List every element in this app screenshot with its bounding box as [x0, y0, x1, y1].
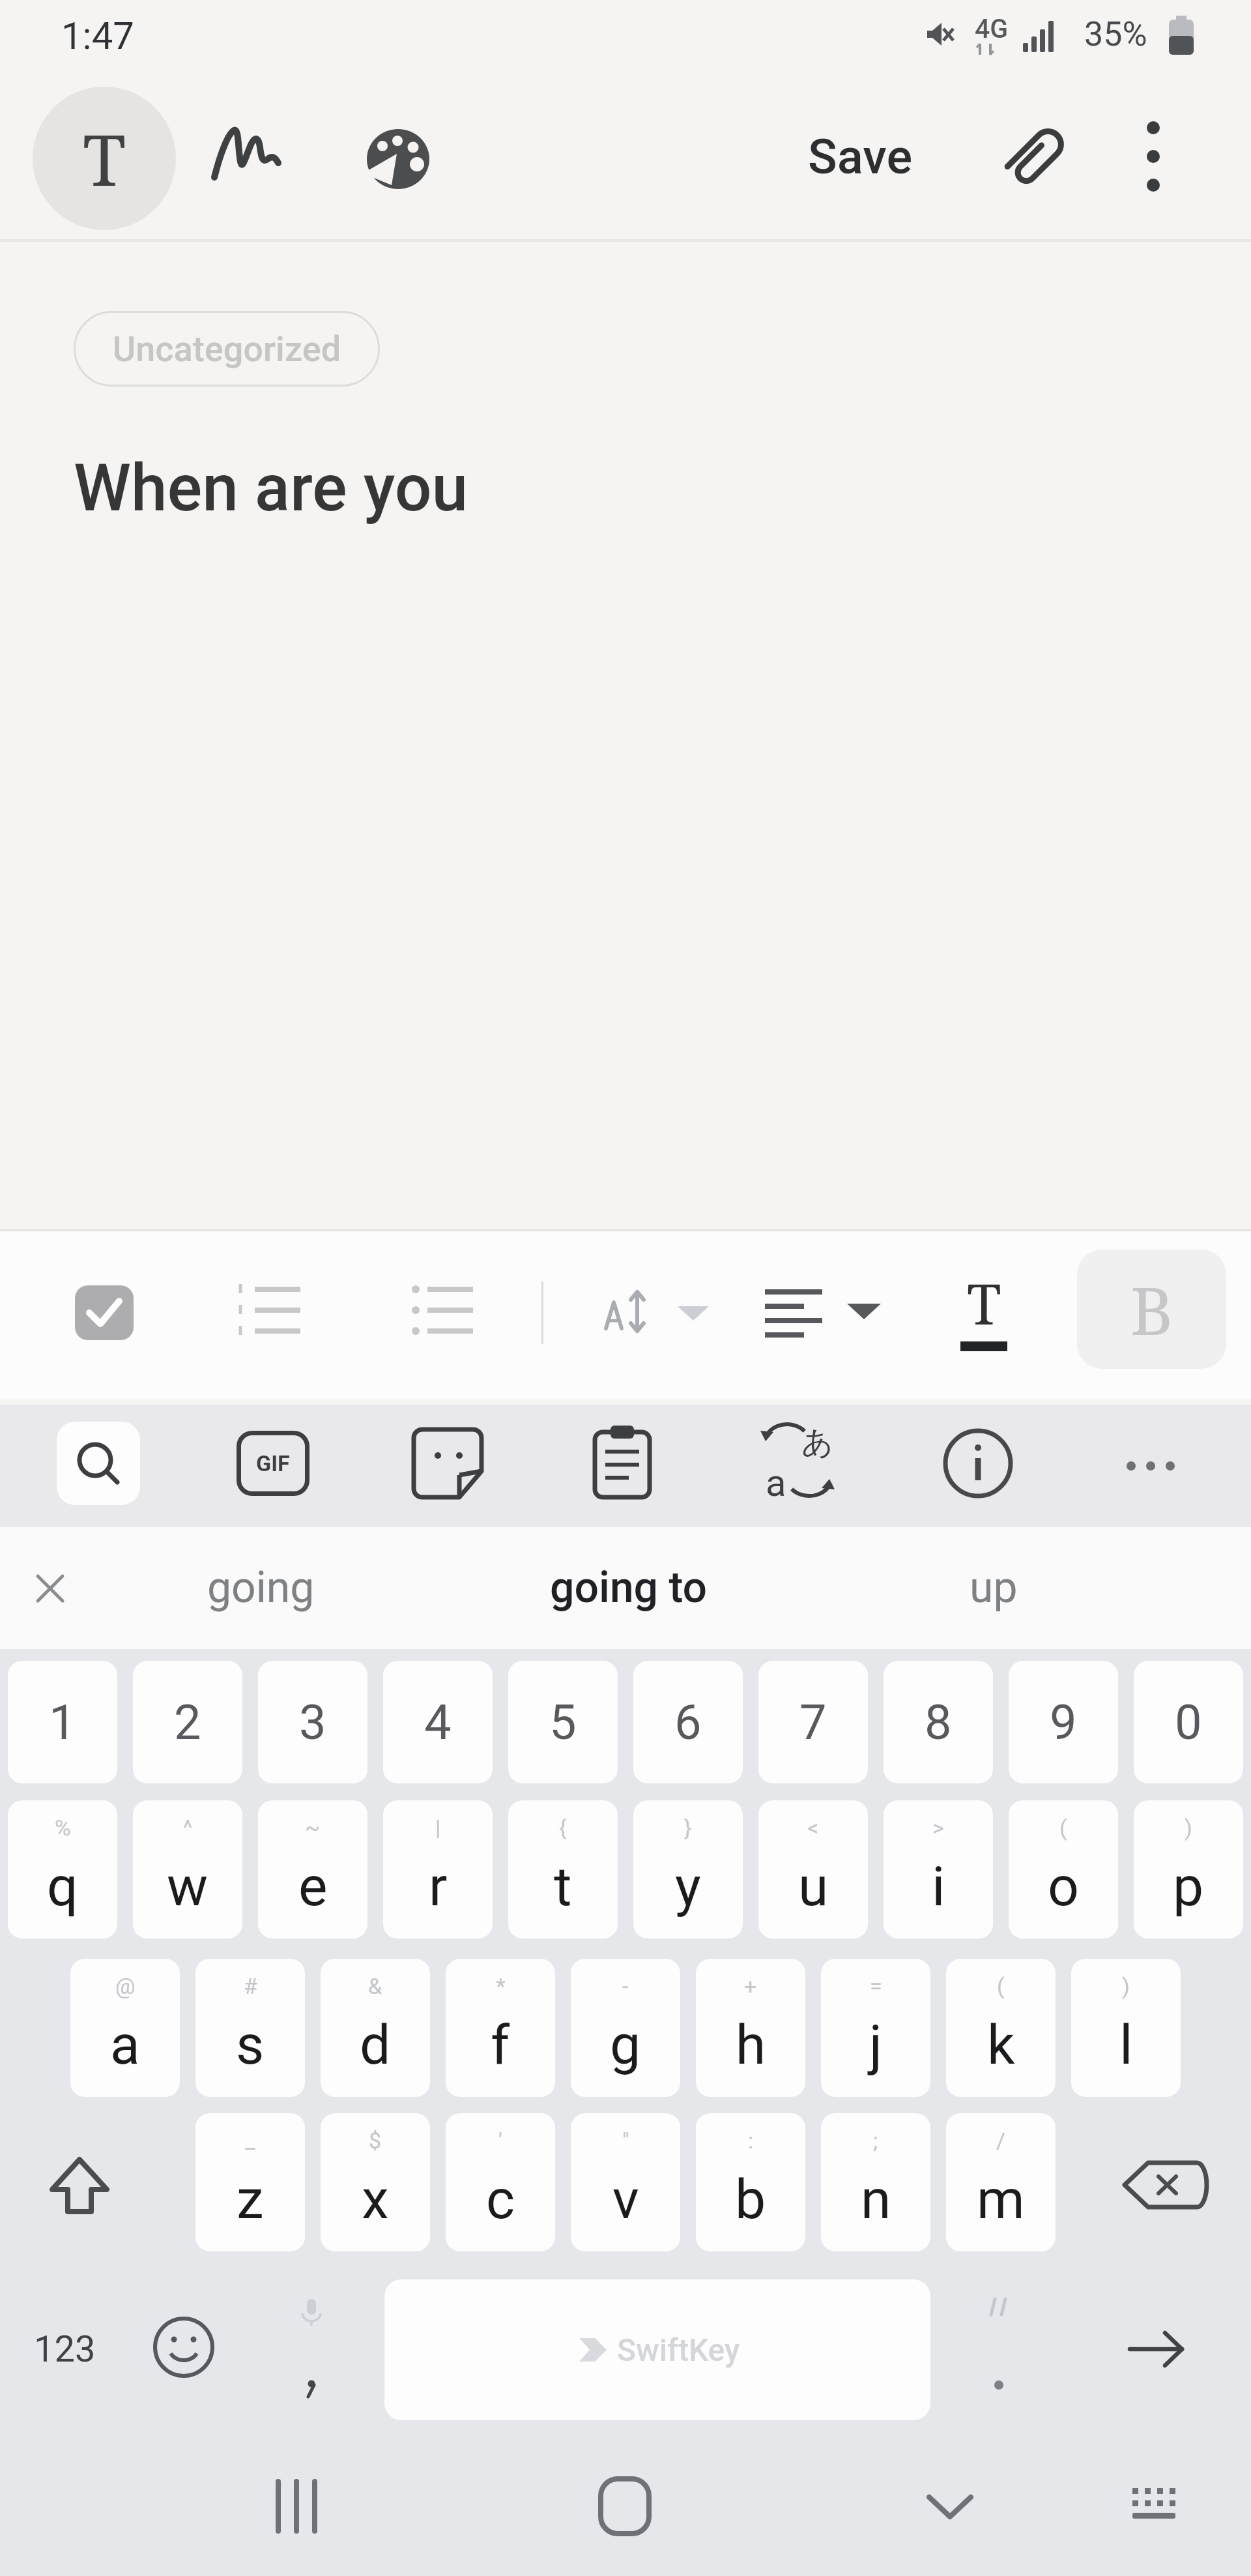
button[interactable]	[577, 1418, 668, 1509]
button[interactable]: i	[884, 1800, 993, 1939]
button[interactable]: l	[1071, 1959, 1181, 2097]
button[interactable]	[990, 111, 1082, 202]
button[interactable]	[356, 117, 441, 202]
button[interactable]: r	[383, 1800, 493, 1939]
button[interactable]: m	[946, 2113, 1056, 2251]
button[interactable]	[579, 2461, 670, 2552]
button[interactable]: n	[821, 2113, 930, 2251]
button[interactable]	[1109, 2461, 1200, 2552]
button[interactable]	[238, 1278, 309, 1343]
button[interactable]: going	[150, 1538, 371, 1636]
button[interactable]: f	[446, 1959, 555, 2097]
staticText: #	[244, 1973, 257, 1999]
button[interactable]: Uncategorized	[74, 311, 380, 387]
staticText: '	[498, 2128, 502, 2154]
staticText: n	[861, 2167, 891, 2231]
button[interactable]: 8	[884, 1661, 993, 1783]
button[interactable]: 0	[1134, 1661, 1243, 1783]
staticText: Save	[808, 128, 913, 185]
staticText: 1	[49, 1694, 76, 1751]
staticText: :	[748, 2128, 754, 2154]
button[interactable]: a	[70, 1959, 180, 2097]
button[interactable]: 5	[508, 1661, 618, 1783]
staticText: (	[1059, 1815, 1067, 1841]
staticText: e	[298, 1854, 328, 1918]
button[interactable]	[410, 1278, 482, 1343]
button[interactable]: T	[33, 87, 176, 230]
button[interactable]	[27, 2154, 132, 2259]
button[interactable]: 123	[8, 2279, 122, 2419]
button[interactable]: y	[633, 1800, 743, 1939]
button[interactable]	[138, 2299, 229, 2390]
button[interactable]: q	[8, 1800, 117, 1939]
button[interactable]: 1	[8, 1661, 117, 1783]
staticText: *	[496, 1973, 506, 1999]
staticText: T	[83, 111, 126, 207]
button[interactable]: B	[1077, 1250, 1226, 1369]
button[interactable]: Save	[782, 111, 938, 202]
button[interactable]	[599, 1278, 717, 1343]
button[interactable]	[932, 1418, 1024, 1509]
button[interactable]: c	[446, 2113, 555, 2251]
staticText: k	[987, 2013, 1015, 2077]
button[interactable]: 7	[758, 1661, 868, 1783]
staticText: v	[612, 2167, 639, 2231]
button[interactable]	[1114, 111, 1192, 202]
staticText: +	[744, 1973, 757, 1999]
button[interactable]	[1101, 2294, 1212, 2405]
button[interactable]	[205, 111, 296, 202]
staticText: u	[798, 1854, 829, 1918]
staticText: {	[559, 1815, 567, 1841]
button[interactable]: T	[938, 1265, 1029, 1369]
button[interactable]: x	[321, 2113, 430, 2251]
button[interactable]	[1112, 2151, 1222, 2262]
button[interactable]: b	[696, 2113, 805, 2251]
button[interactable]: s	[195, 1959, 305, 2097]
button[interactable]: o	[1009, 1800, 1118, 1939]
staticText: 7	[799, 1694, 827, 1751]
button[interactable]: h	[696, 1959, 805, 2097]
button[interactable]: 2	[133, 1661, 242, 1783]
button[interactable]: up	[906, 1538, 1082, 1636]
button[interactable]	[761, 1278, 885, 1343]
button[interactable]	[70, 1280, 135, 1345]
button[interactable]: g	[571, 1959, 680, 2097]
button[interactable]	[254, 2461, 345, 2552]
button[interactable]: 4	[383, 1661, 493, 1783]
button[interactable]: 6	[633, 1661, 743, 1783]
staticText: ^	[183, 1815, 193, 1841]
staticText: l	[1119, 2013, 1133, 2077]
staticText: 9	[1050, 1694, 1077, 1751]
button[interactable]: SwiftKey	[384, 2279, 930, 2420]
staticText: r	[429, 1854, 448, 1918]
staticText: b	[735, 2167, 766, 2231]
staticText: 3	[299, 1694, 326, 1751]
button[interactable]: going to	[502, 1538, 756, 1636]
staticText: &	[368, 1973, 382, 1999]
button[interactable]: a	[751, 1418, 842, 1509]
button[interactable]: k	[946, 1959, 1056, 2097]
button[interactable]: w	[133, 1800, 242, 1939]
button[interactable]: 3	[258, 1661, 367, 1783]
button[interactable]: j	[821, 1959, 930, 2097]
button[interactable]	[261, 2279, 365, 2419]
button[interactable]	[20, 1558, 81, 1620]
button[interactable]	[948, 2279, 1052, 2419]
button[interactable]: t	[508, 1800, 618, 1939]
button[interactable]: GIF	[227, 1418, 319, 1509]
staticText: 35%	[1084, 14, 1147, 54]
button[interactable]	[904, 2461, 996, 2552]
button[interactable]	[57, 1422, 140, 1505]
staticText: z	[237, 2167, 264, 2231]
staticText: o	[1048, 1854, 1079, 1918]
button[interactable]	[1105, 1418, 1196, 1509]
button[interactable]: v	[571, 2113, 680, 2251]
staticText: i	[932, 1854, 945, 1918]
button[interactable]: p	[1134, 1800, 1243, 1939]
button[interactable]: e	[258, 1800, 367, 1939]
button[interactable]: u	[758, 1800, 868, 1939]
button[interactable]: 9	[1009, 1661, 1118, 1783]
button[interactable]: d	[321, 1959, 430, 2097]
button[interactable]: z	[195, 2113, 305, 2251]
button[interactable]	[402, 1418, 493, 1509]
